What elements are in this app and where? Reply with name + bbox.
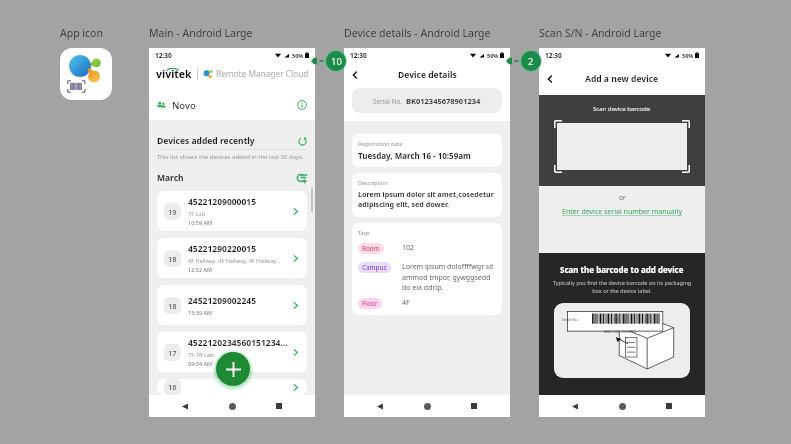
staticText: 18 [168, 301, 177, 311]
button[interactable]: Recents [463, 395, 485, 417]
staticText: Lorem ipsum dolor sit amet,cosedetur adi… [358, 189, 496, 209]
staticText: Campus [362, 263, 387, 272]
staticText: Typically you find the device barcode on… [548, 279, 696, 295]
staticText: Remote Manager Cloud [216, 68, 309, 79]
staticText: Tuesday, March 16 - 10:59am [358, 150, 471, 161]
button[interactable]: Add device [216, 352, 250, 386]
button[interactable]: 18 [157, 285, 307, 325]
staticText: 24521209002245 [188, 295, 257, 307]
staticText: Serial No. : [562, 317, 581, 322]
staticText: 4F Hallway, 4F Hallway, 4F Hallway... [188, 257, 281, 264]
staticText: Serial No. [373, 97, 403, 106]
staticText: 45221209000015 [188, 196, 257, 208]
staticText: Device details [398, 69, 457, 81]
staticText: Novo [172, 99, 196, 112]
button[interactable]: 17 [157, 332, 307, 372]
staticText: 2 [528, 55, 534, 68]
staticText: Scan the barcode to add device [560, 264, 684, 275]
button[interactable]: Recents [658, 395, 680, 417]
staticText: 12:30 [350, 51, 367, 60]
button[interactable]: Recents [268, 395, 290, 417]
button[interactable]: Home [221, 395, 243, 417]
staticText: 12:30 [545, 51, 562, 60]
staticText: Registration date [358, 140, 403, 147]
staticText: March [157, 172, 184, 183]
staticText: Main - Android Large [149, 26, 253, 40]
button[interactable]: 16 [157, 379, 307, 395]
staticText: Devices added recently [157, 135, 255, 147]
staticText: 12:30 [155, 51, 172, 60]
button[interactable]: Back [344, 64, 366, 86]
button[interactable]: Back [369, 395, 391, 417]
staticText: 09:34 AM [188, 360, 212, 367]
staticText: Add a new device [585, 73, 659, 85]
staticText: 16 [168, 382, 177, 392]
staticText: 45221290220015 [188, 243, 257, 255]
staticText: Device details - Android Large [344, 26, 491, 40]
staticText: Room [362, 244, 380, 253]
button[interactable]: Novo [149, 90, 315, 120]
staticText: Lorem ipsum doloffffwgr sit ammod tmpor,… [402, 262, 496, 292]
staticText: BKB5124010200014 [604, 329, 636, 334]
button[interactable]: 18 [157, 238, 307, 278]
staticText: 4F [402, 298, 410, 308]
staticText: 7F Lab [188, 210, 205, 217]
staticText: Description [358, 179, 388, 186]
button[interactable]: 19 [157, 191, 307, 231]
staticText: App icon [60, 26, 103, 40]
staticText: Floor [362, 299, 378, 308]
staticText: This list shows the devices added in the… [157, 153, 304, 161]
staticText: 19 [168, 207, 177, 217]
other: Info [297, 100, 307, 110]
button[interactable]: Back [564, 395, 586, 417]
staticText: 7F-1B Lab [188, 351, 214, 358]
staticText: 102 [402, 243, 415, 253]
button[interactable]: Back [539, 68, 561, 90]
other: Sort and add [297, 173, 307, 183]
staticText: 50% [682, 52, 694, 59]
staticText: Scan device barcode [593, 105, 651, 113]
button[interactable]: Home [416, 395, 438, 417]
staticText: 50% [292, 52, 304, 59]
staticText: 12:52 AM [188, 266, 212, 273]
button[interactable]: Back [174, 395, 196, 417]
staticText: Enter device serial number manually [562, 207, 682, 217]
staticText: or [619, 193, 626, 202]
staticText: 15:39 AM [188, 309, 212, 316]
staticText: 10 [331, 55, 342, 68]
staticText: 45221202345601512345... [188, 337, 291, 349]
staticText: Scan S/N - Android Large [539, 26, 662, 40]
staticText: 10:59 AM [188, 219, 212, 226]
staticText: 17 [168, 348, 177, 358]
staticText: Tags [358, 229, 370, 236]
other: Refresh [298, 137, 307, 146]
staticText: vivitek [156, 67, 192, 81]
button[interactable]: Home [611, 395, 633, 417]
staticText: 50% [487, 52, 499, 59]
staticText: 18 [168, 254, 177, 264]
button[interactable]: Enter device serial number manually [562, 207, 682, 217]
staticText: BK012345678901234 [406, 96, 481, 106]
